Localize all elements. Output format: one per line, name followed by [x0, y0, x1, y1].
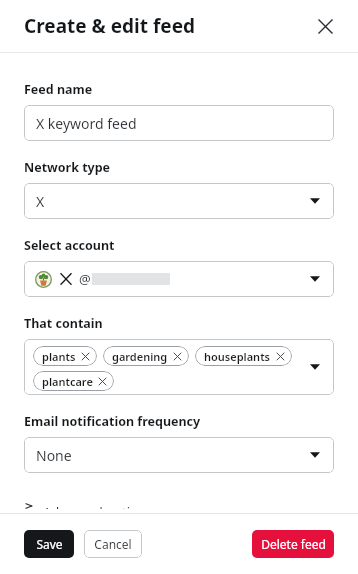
- button[interactable]: Advanced options: [24, 499, 153, 513]
- button[interactable]: houseplants: [195, 346, 292, 366]
- button[interactable]: plantcare: [33, 371, 114, 391]
- staticText: plantcare: [42, 374, 93, 389]
- staticText: Cancel: [94, 536, 132, 552]
- staticText: That contain: [24, 315, 103, 332]
- staticText: Network type: [24, 159, 111, 176]
- staticText: X: [36, 192, 45, 211]
- staticText: houseplants: [204, 349, 271, 364]
- button[interactable]: None: [24, 437, 334, 473]
- staticText: Select account: [24, 237, 115, 254]
- staticText: gardening: [112, 349, 168, 364]
- staticText: Email notification frequency: [24, 413, 201, 430]
- button[interactable]: plants: [33, 346, 97, 366]
- staticText: Advanced options: [43, 503, 153, 509]
- button[interactable]: X: [24, 183, 334, 219]
- button[interactable]: gardening: [103, 346, 189, 366]
- staticText: Save: [36, 536, 63, 552]
- button[interactable]: X keyword feed: [24, 105, 334, 141]
- staticText: @: [79, 270, 91, 288]
- staticText: Create & edit feed: [24, 13, 196, 39]
- staticText: plants: [42, 349, 76, 364]
- staticText: X keyword feed: [36, 114, 137, 133]
- staticText: Delete feed: [261, 536, 326, 552]
- button[interactable]: Delete feed: [252, 530, 334, 558]
- button[interactable]: Close: [308, 9, 342, 43]
- button[interactable]: Cancel: [84, 530, 142, 558]
- button[interactable]: plants: [24, 339, 334, 395]
- staticText: None: [36, 446, 72, 465]
- staticText: Feed name: [24, 81, 93, 98]
- button[interactable]: @: [24, 261, 334, 297]
- button[interactable]: Save: [24, 530, 74, 558]
